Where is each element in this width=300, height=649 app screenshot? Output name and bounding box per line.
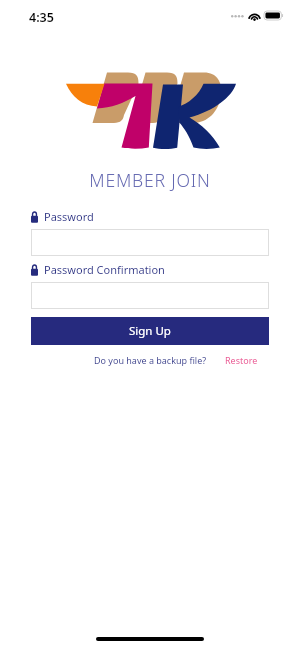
staticText: 4:35 (29, 9, 54, 26)
staticText: Sign Up (129, 323, 171, 339)
staticText: MEMBER JOIN (0, 168, 300, 192)
button[interactable]: Sign Up (31, 317, 269, 345)
staticText: Restore (225, 354, 258, 366)
button[interactable] (31, 229, 269, 256)
staticText: Do you have a backup file? (94, 354, 207, 366)
button[interactable] (31, 282, 269, 309)
staticText: Password (44, 209, 94, 224)
staticText: Password Confirmation (44, 262, 165, 277)
button[interactable]: Restore (225, 354, 258, 366)
